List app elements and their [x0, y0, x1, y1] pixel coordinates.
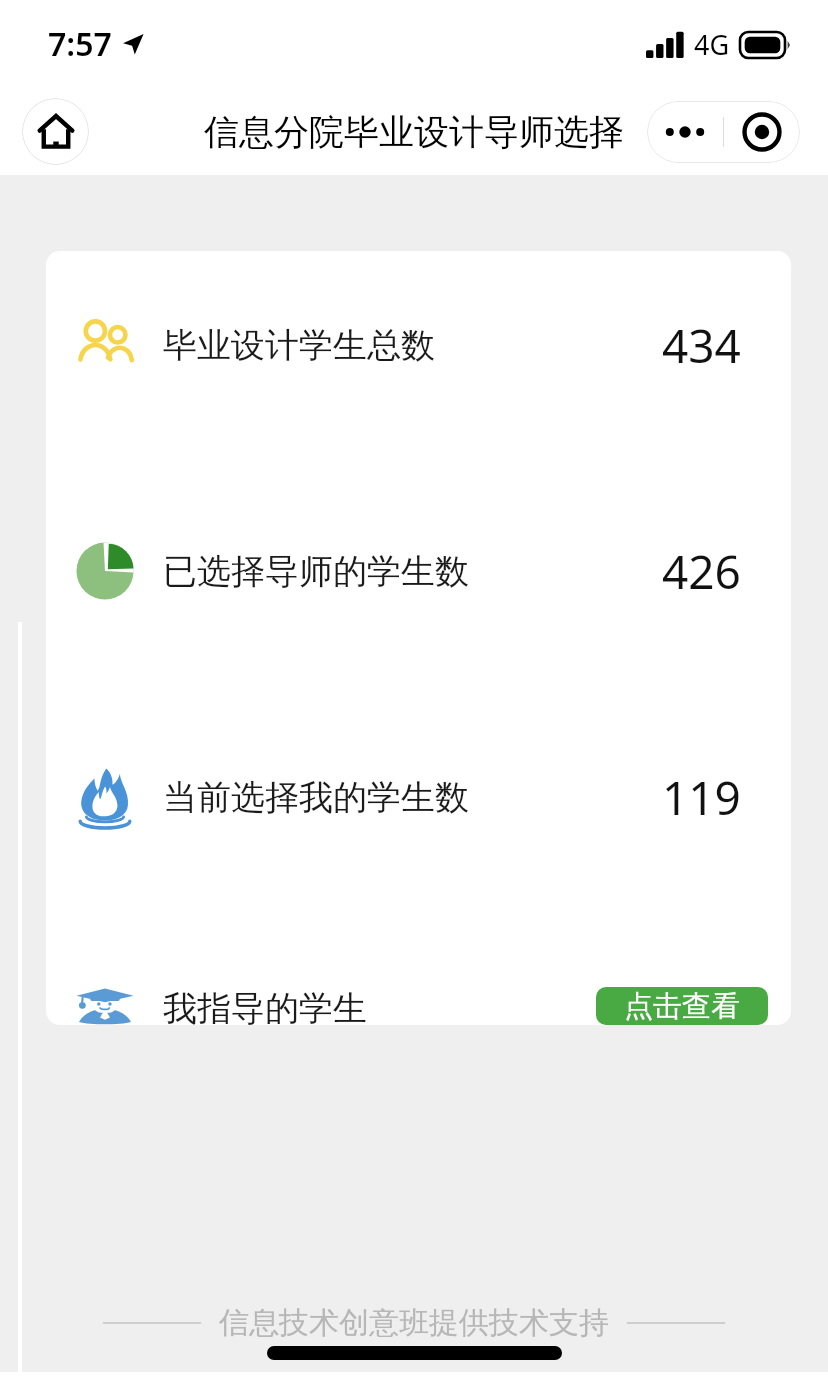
- staticText: 信息分院毕业设计导师选择: [204, 110, 624, 154]
- button[interactable]: Home: [22, 98, 89, 165]
- staticText: 我指导的学生: [163, 987, 367, 1025]
- staticText: 4G: [694, 26, 730, 63]
- button[interactable]: 我指导的学生: [46, 987, 791, 1025]
- staticText: 119: [662, 766, 741, 829]
- staticText: 毕业设计学生总数: [163, 324, 435, 367]
- staticText: 7:57: [48, 22, 112, 66]
- button[interactable]: 已选择导师的学生数: [46, 535, 791, 607]
- staticText: 已选择导师的学生数: [163, 550, 469, 593]
- button[interactable]: 毕业设计学生总数: [46, 309, 791, 381]
- staticText: 434: [662, 314, 741, 377]
- staticText: 当前选择我的学生数: [163, 776, 469, 819]
- button[interactable]: More: [647, 101, 723, 163]
- button[interactable]: 当前选择我的学生数: [46, 761, 791, 833]
- staticText: 426: [662, 540, 741, 603]
- staticText: 信息技术创意班提供技术支持: [219, 1304, 609, 1342]
- staticText: 点击查看: [624, 988, 740, 1025]
- button[interactable]: Close: [724, 101, 800, 163]
- button[interactable]: 点击查看: [596, 987, 768, 1025]
